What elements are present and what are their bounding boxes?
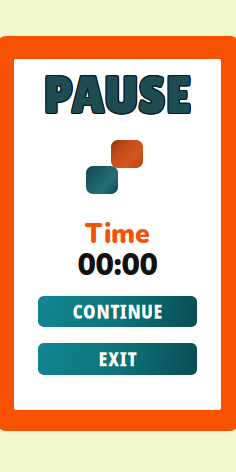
button[interactable]: CONTINUE	[38, 296, 197, 327]
button[interactable]: EXIT	[38, 343, 197, 375]
staticText: Time	[85, 216, 150, 252]
staticText: PAUSE	[45, 65, 193, 124]
staticText: PAUSE	[44, 64, 192, 123]
staticText: PAUSE	[43, 66, 191, 125]
staticText: PAUSE	[43, 65, 191, 124]
staticText: PAUSE	[45, 64, 193, 123]
staticText: PAUSE	[44, 65, 192, 124]
staticText: PAUSE	[44, 66, 192, 125]
staticText: PAUSE	[45, 66, 193, 125]
staticText: 00:00	[77, 244, 157, 286]
staticText: PAUSE	[43, 64, 191, 123]
staticText: EXIT	[99, 346, 136, 372]
staticText: CONTINUE	[72, 299, 163, 324]
